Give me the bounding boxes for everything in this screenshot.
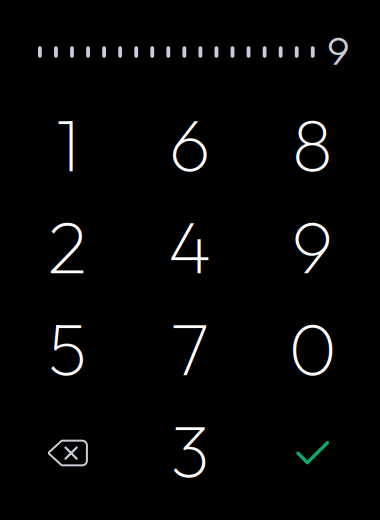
staticText: 4 [168,200,212,292]
staticText: 0 [288,302,336,394]
button[interactable]: 5 [6,297,129,399]
button[interactable]: 8 [251,93,374,195]
button[interactable]: 4 [129,195,251,297]
button[interactable]: 1 [6,93,129,195]
staticText: 9 [327,25,350,75]
button[interactable]: 0 [251,297,374,399]
staticText: 3 [170,404,209,496]
staticText: 8 [292,98,333,190]
button[interactable]: 2 [6,195,129,297]
staticText: 5 [48,302,87,394]
button[interactable]: 9 [251,195,374,297]
staticText: 9 [291,200,333,292]
button[interactable]: Confirm [251,399,374,501]
staticText: 1 [56,98,80,190]
staticText: 6 [169,98,211,190]
staticText: 2 [48,200,88,292]
button[interactable]: Delete [6,399,129,501]
button[interactable]: 6 [129,93,251,195]
staticText: 7 [170,302,209,394]
button[interactable]: 7 [129,297,251,399]
button[interactable]: 3 [129,399,251,501]
